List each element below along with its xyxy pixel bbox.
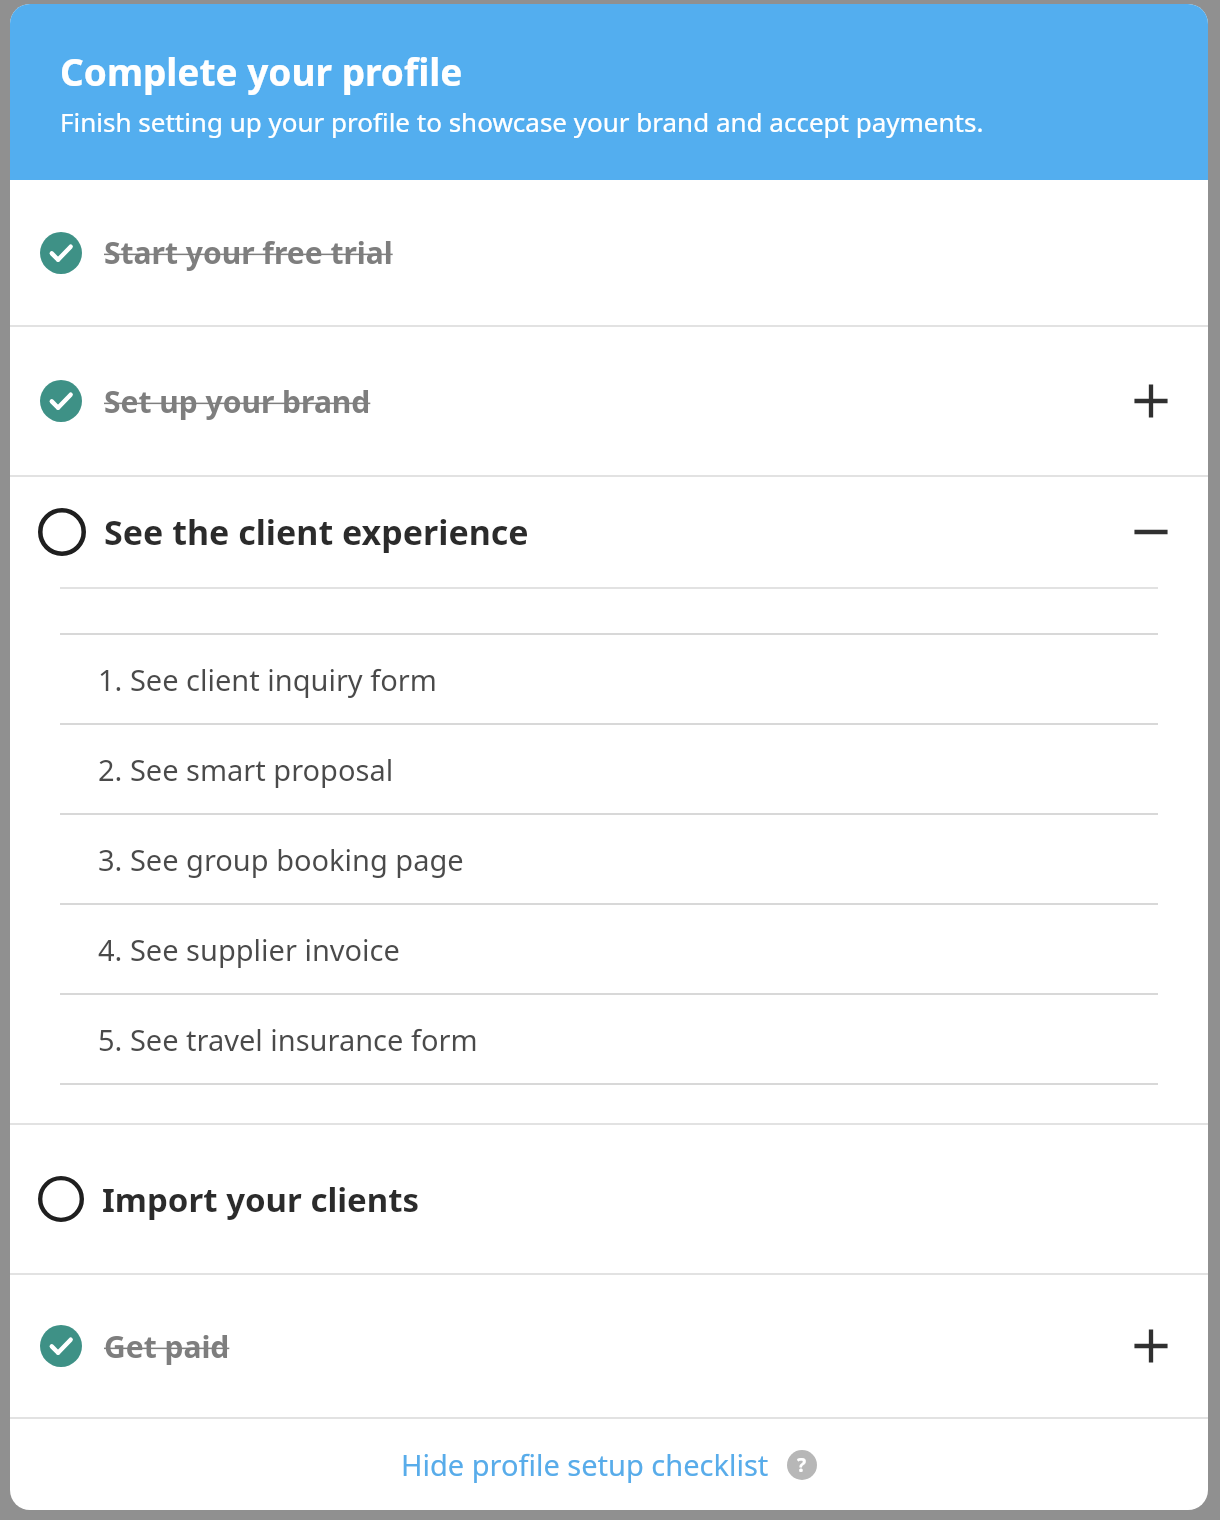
button[interactable]: Hide profile setup checklist bbox=[381, 1431, 837, 1498]
button[interactable]: 1. See client inquiry form bbox=[60, 635, 1158, 723]
button[interactable]: Import your clients bbox=[10, 1125, 1208, 1273]
button[interactable]: 2. See smart proposal bbox=[60, 725, 1158, 813]
staticText: Get paid bbox=[104, 1326, 230, 1367]
staticText: 1. See client inquiry form bbox=[98, 660, 437, 699]
staticText: Start your free trial bbox=[104, 232, 393, 273]
button[interactable]: 3. See group booking page bbox=[60, 815, 1158, 903]
button[interactable]: Expand section bbox=[1124, 374, 1178, 428]
button[interactable]: See the client experience bbox=[10, 477, 1208, 587]
button[interactable]: Collapse section bbox=[1124, 505, 1178, 559]
staticText: Hide profile setup checklist bbox=[401, 1445, 769, 1484]
button[interactable]: 4. See supplier invoice bbox=[60, 905, 1158, 993]
button[interactable]: Expand section bbox=[1124, 1319, 1178, 1373]
staticText: See the client experience bbox=[104, 509, 529, 555]
staticText: ? bbox=[797, 1452, 807, 1478]
staticText: Set up your brand bbox=[104, 381, 371, 422]
staticText: 4. See supplier invoice bbox=[98, 930, 400, 969]
staticText: Finish setting up your profile to showca… bbox=[60, 104, 984, 139]
button[interactable]: Set up your brand bbox=[10, 327, 1208, 475]
staticText: Import your clients bbox=[102, 1177, 420, 1222]
staticText: 2. See smart proposal bbox=[98, 750, 394, 789]
staticText: Complete your profile bbox=[60, 46, 463, 96]
button[interactable]: Get paid bbox=[10, 1275, 1208, 1417]
staticText: 3. See group booking page bbox=[98, 840, 464, 879]
staticText: 5. See travel insurance form bbox=[98, 1020, 478, 1059]
button[interactable]: Start your free trial bbox=[10, 180, 1208, 325]
button[interactable]: 5. See travel insurance form bbox=[60, 995, 1158, 1083]
